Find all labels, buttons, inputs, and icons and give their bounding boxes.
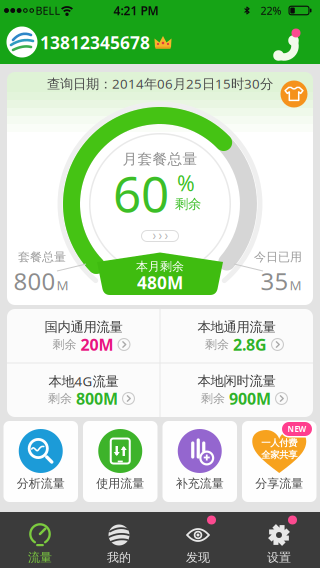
staticText: 分析流量 bbox=[17, 476, 65, 491]
staticText: 使用流量 bbox=[96, 476, 144, 491]
staticText: 剩余 bbox=[205, 337, 229, 352]
staticText: % bbox=[177, 169, 195, 197]
staticText: 60 bbox=[113, 160, 169, 226]
button[interactable]: Data rewards bbox=[280, 80, 307, 107]
staticText: 剩余 bbox=[175, 196, 201, 212]
staticText: 全家共享 bbox=[261, 449, 297, 461]
staticText: ❯ ❯ ❯ bbox=[152, 233, 168, 239]
staticText: 国内通用流量 bbox=[44, 319, 122, 335]
button[interactable]: 本地4G流量 bbox=[7, 363, 160, 417]
staticText: 480M bbox=[137, 271, 183, 294]
staticText: 套餐总量 bbox=[18, 250, 66, 264]
staticText: 我的 bbox=[107, 550, 131, 565]
button[interactable]: 流量 bbox=[10, 512, 70, 568]
button[interactable]: 设置 bbox=[249, 512, 309, 568]
staticText: 13812345678 bbox=[40, 31, 150, 54]
staticText: 22% bbox=[260, 3, 281, 18]
button[interactable]: 使用流量 bbox=[83, 421, 157, 502]
staticText: 本月剩余 bbox=[136, 259, 184, 274]
button[interactable]: 我的 bbox=[89, 512, 149, 568]
staticText: NEW bbox=[287, 424, 306, 434]
staticText: BELL bbox=[35, 3, 60, 18]
staticText: 剩余 bbox=[52, 337, 76, 352]
staticText: 800M bbox=[76, 388, 118, 409]
button[interactable]: Call bbox=[268, 30, 302, 64]
staticText: 本地4G流量 bbox=[48, 372, 118, 390]
button[interactable]: 发现 bbox=[168, 512, 228, 568]
staticText: 800 bbox=[13, 265, 55, 297]
staticText: M bbox=[289, 276, 301, 294]
button[interactable]: 补充流量 bbox=[162, 421, 237, 502]
staticText: 本地闲时流量 bbox=[197, 373, 275, 389]
staticText: M bbox=[56, 276, 68, 294]
staticText: 4:21 PM bbox=[113, 2, 158, 18]
staticText: 查询日期：2014年06月25日15时30分 bbox=[47, 75, 273, 92]
staticText: 本地通用流量 bbox=[197, 319, 275, 335]
staticText: 补充流量 bbox=[176, 476, 224, 491]
button[interactable]: 本月剩余 bbox=[0, 0, 320, 568]
staticText: 一人付费 bbox=[261, 437, 297, 449]
staticText: 设置 bbox=[267, 550, 291, 565]
button[interactable]: 分析流量 bbox=[3, 421, 78, 502]
button[interactable]: 本地闲时流量 bbox=[160, 363, 313, 417]
staticText: 2.8G bbox=[233, 334, 267, 355]
staticText: 20M bbox=[80, 334, 113, 355]
staticText: 剩余 bbox=[48, 391, 72, 406]
button[interactable]: 本地通用流量 bbox=[160, 309, 313, 363]
button[interactable]: 国内通用流量 bbox=[7, 309, 160, 363]
staticText: 35 bbox=[260, 265, 288, 297]
staticText: 流量 bbox=[28, 550, 52, 565]
staticText: 月套餐总量 bbox=[122, 150, 197, 168]
staticText: 900M bbox=[229, 388, 271, 409]
staticText: 分享流量 bbox=[255, 476, 303, 491]
staticText: 今日已用 bbox=[254, 250, 302, 264]
button[interactable]: 一人付费 bbox=[242, 421, 316, 502]
staticText: 剩余 bbox=[201, 391, 225, 406]
staticText: 发现 bbox=[186, 550, 210, 565]
